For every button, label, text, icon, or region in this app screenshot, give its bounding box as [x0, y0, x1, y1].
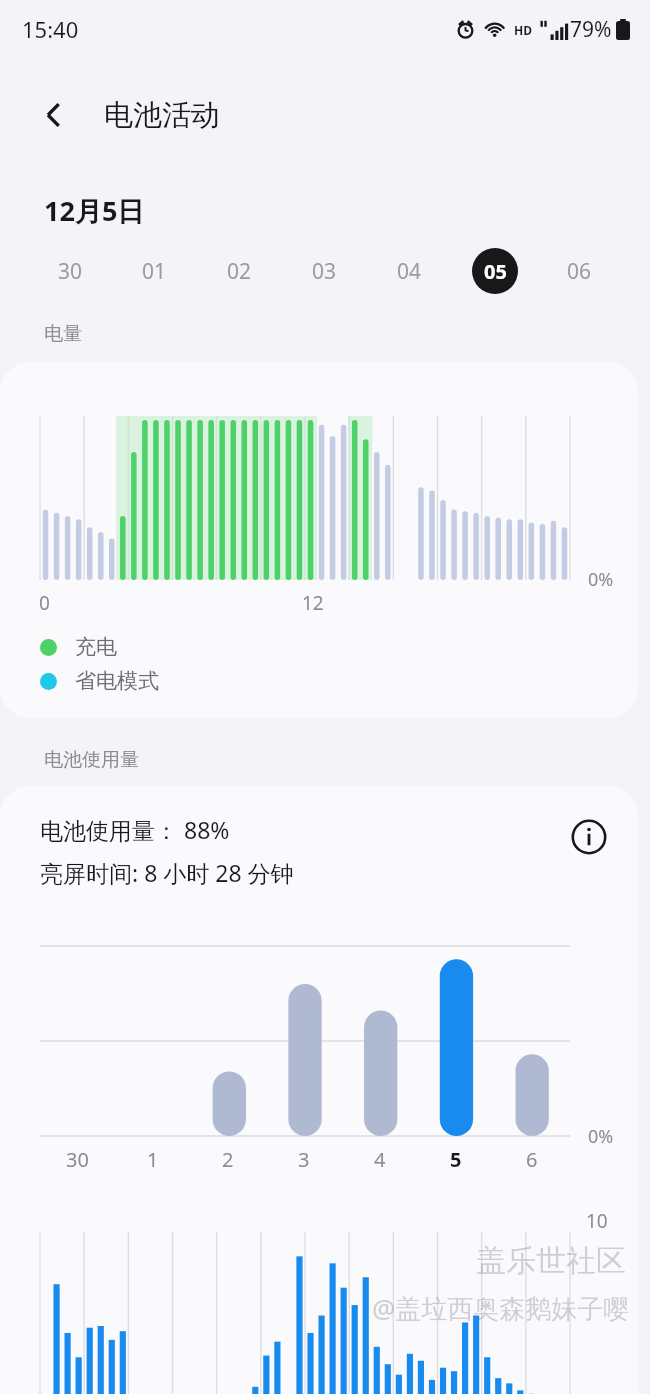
button[interactable]: 01	[112, 242, 197, 300]
staticText: 6	[526, 1146, 538, 1173]
staticText: 4	[374, 1146, 386, 1173]
staticText: 盖乐世社区	[476, 1242, 626, 1280]
button[interactable]: 信息	[566, 814, 612, 860]
button[interactable]: 04	[367, 242, 452, 300]
staticText: 充电	[75, 634, 117, 660]
staticText: @盖垃西奥森鹅妹子嘤	[372, 1290, 630, 1326]
staticText: 12月5日	[44, 192, 145, 229]
staticText: 电池活动	[104, 97, 220, 134]
staticText: 06	[567, 257, 592, 286]
staticText: 30	[58, 257, 83, 286]
staticText: 3	[298, 1146, 310, 1173]
staticText: 02	[227, 257, 252, 286]
staticText: 1	[147, 1146, 159, 1173]
button[interactable]: 0%	[0, 362, 638, 718]
button[interactable]: 30	[28, 242, 112, 300]
staticText: 79%	[570, 15, 612, 44]
staticText: 电池使用量： 88%	[40, 814, 230, 845]
staticText: 10	[586, 1208, 608, 1234]
staticText: 04	[397, 257, 422, 286]
button[interactable]: 02	[197, 242, 282, 300]
staticText: 5	[450, 1146, 462, 1173]
button[interactable]: 返回	[30, 91, 78, 139]
staticText: 30	[66, 1146, 89, 1173]
staticText: 省电模式	[75, 668, 159, 694]
staticText: 15:40	[22, 14, 79, 44]
staticText: HD	[514, 22, 532, 38]
button[interactable]: 省电模式	[40, 668, 159, 694]
staticText: 亮屏时间: 8 小时 28 分钟	[40, 857, 294, 888]
staticText: 0%	[588, 567, 614, 592]
button[interactable]: 03	[282, 242, 367, 300]
staticText: 01	[142, 257, 167, 286]
staticText: 0	[39, 590, 50, 616]
staticText: 03	[312, 257, 337, 286]
staticText: 05	[484, 258, 507, 285]
button[interactable]: 充电	[40, 634, 117, 660]
staticText: 12	[302, 590, 324, 616]
staticText: 0%	[588, 1124, 614, 1149]
button[interactable]: 05	[452, 242, 537, 300]
staticText: 电量	[44, 322, 82, 346]
button[interactable]: 06	[537, 242, 622, 300]
staticText: 2	[222, 1146, 234, 1173]
staticText: 电池使用量	[44, 748, 139, 772]
